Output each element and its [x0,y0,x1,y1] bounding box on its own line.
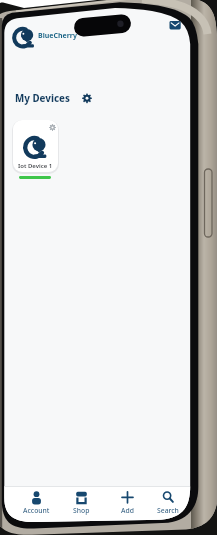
button[interactable] [169,20,182,31]
staticText: Account [23,506,50,515]
button[interactable] [81,92,94,105]
button[interactable]: Iot Device 1 [13,120,58,172]
button[interactable]: Shop [60,487,102,518]
staticText: My Devices [15,92,70,105]
staticText: Add [121,506,134,515]
button[interactable]: Account [15,487,57,518]
button[interactable]: Add [106,487,148,518]
staticText: Shop [73,506,90,515]
staticText: BlueCherry [38,31,77,41]
button[interactable]: Search [147,487,189,518]
staticText: Iot Device 1 [18,162,53,170]
staticText: Search [157,506,179,515]
